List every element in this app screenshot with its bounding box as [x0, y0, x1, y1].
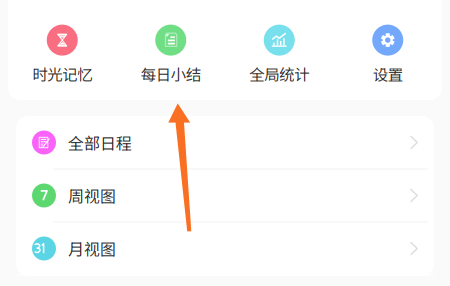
staticText: 时光记忆 [32, 63, 92, 85]
staticText: 设置 [373, 63, 403, 85]
button[interactable]: 设置 [333, 25, 442, 100]
button[interactable]: 周视图 [16, 169, 434, 222]
staticText: 全部日程 [68, 131, 132, 154]
staticText: 月视图 [68, 237, 116, 260]
staticText: 周视图 [68, 184, 116, 207]
button[interactable]: 全局统计 [225, 25, 333, 100]
button[interactable]: 每日小结 [116, 25, 225, 100]
staticText: 每日小结 [141, 63, 201, 85]
button[interactable]: 时光记忆 [8, 25, 116, 100]
button[interactable]: 月视图 [16, 222, 434, 275]
button[interactable]: 全部日程 [16, 116, 434, 169]
staticText: 全局统计 [249, 63, 309, 85]
